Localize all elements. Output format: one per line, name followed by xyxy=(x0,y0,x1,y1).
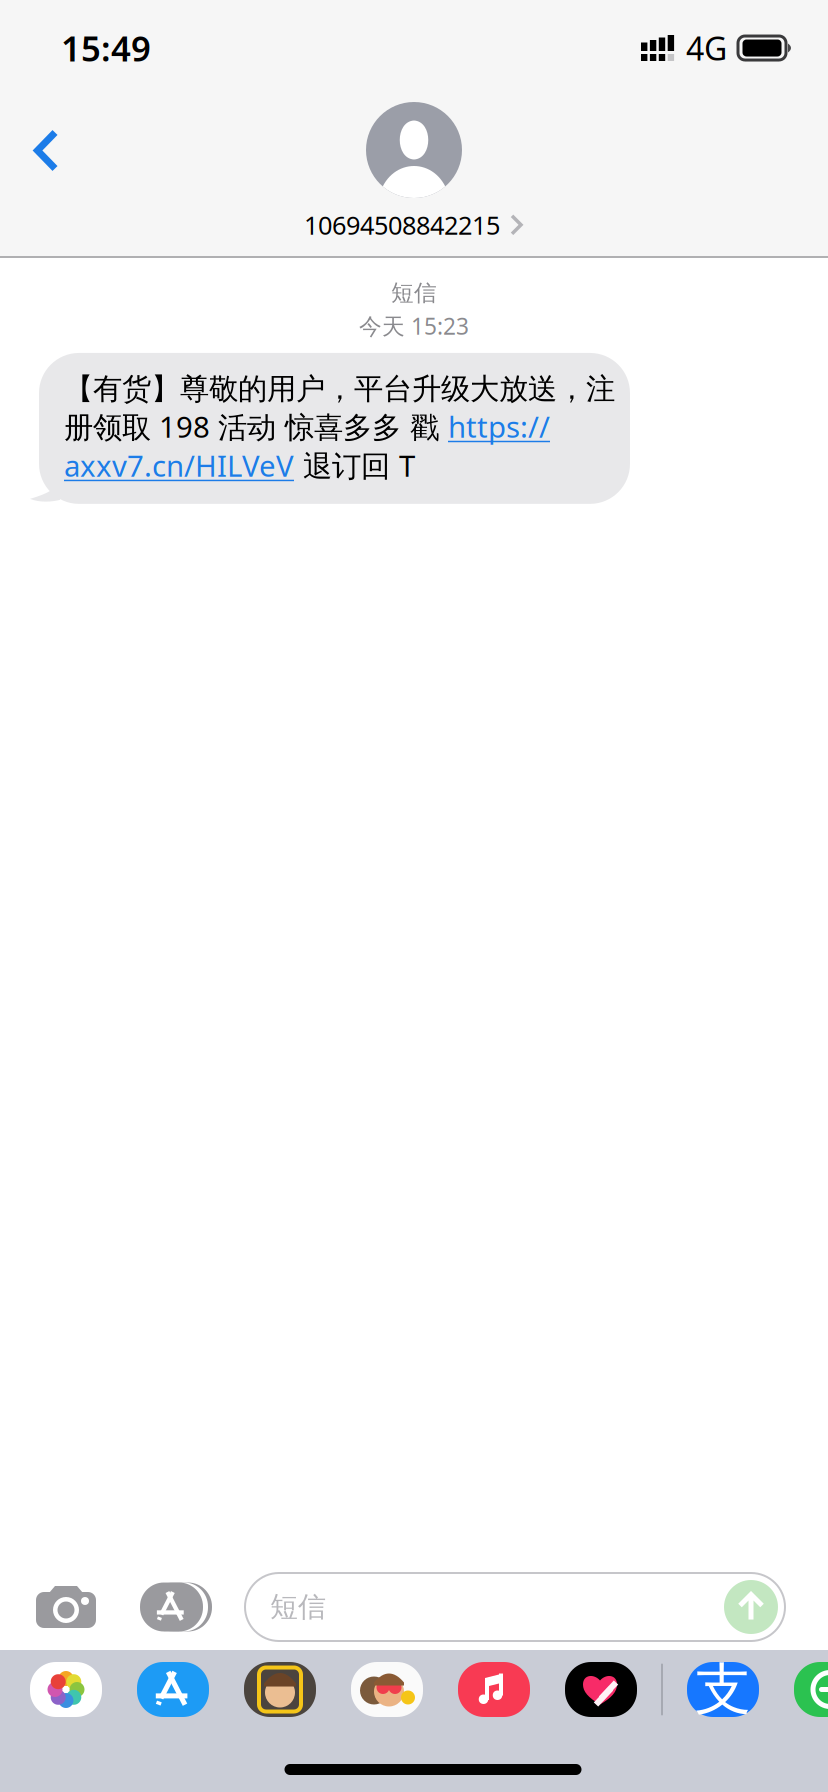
button[interactable]: Send xyxy=(724,1580,778,1634)
button[interactable]: Photos xyxy=(30,1662,102,1717)
staticText: 10694508842215 xyxy=(304,208,500,242)
staticText: axxv7.cn/HILVeV xyxy=(64,446,294,485)
button[interactable]: WeChat xyxy=(794,1662,828,1717)
button[interactable]: App Store xyxy=(137,1662,209,1717)
button[interactable]: Apps xyxy=(140,1569,245,1644)
button[interactable]: Memoji xyxy=(244,1662,316,1717)
button[interactable]: Camera xyxy=(0,1573,140,1641)
staticText: 支 xyxy=(695,1655,751,1724)
staticText: 今天 15:23 xyxy=(359,311,469,341)
button[interactable]: Back xyxy=(0,109,85,192)
button[interactable]: Alipay xyxy=(687,1662,759,1717)
button[interactable]: Fitness xyxy=(565,1662,637,1717)
staticText: 15:49 xyxy=(61,25,151,71)
button[interactable]: Stickers xyxy=(351,1662,423,1717)
staticText: 退订回 T xyxy=(294,446,415,485)
staticText: 4G xyxy=(686,27,727,69)
button[interactable]: Music xyxy=(458,1662,530,1717)
staticText: 短信 xyxy=(391,279,437,307)
staticText: 册领取 198 活动 惊喜多多 戳 xyxy=(64,407,448,446)
staticText: 短信 xyxy=(270,1590,326,1624)
staticText: https:// xyxy=(448,407,550,446)
staticText: 【有货】尊敬的用户，平台升级大放送，注 xyxy=(64,371,615,407)
